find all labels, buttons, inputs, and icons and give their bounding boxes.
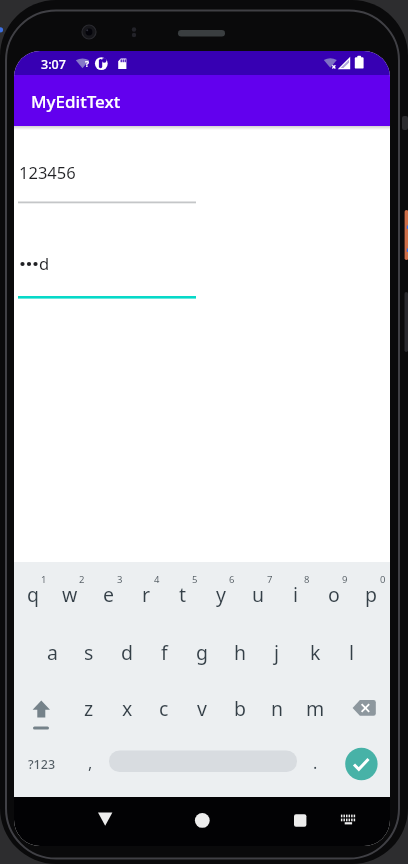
- button[interactable]: v: [184, 685, 220, 731]
- button[interactable]: [109, 752, 297, 774]
- staticText: ?: [85, 58, 90, 70]
- staticText: d: [39, 252, 50, 274]
- button[interactable]: n: [259, 685, 295, 731]
- button[interactable]: l: [334, 629, 370, 675]
- button[interactable]: s: [71, 629, 107, 675]
- button[interactable]: i: [278, 571, 314, 617]
- staticText: 3: [117, 573, 123, 586]
- staticText: u: [252, 581, 265, 608]
- button[interactable]: ,: [75, 743, 105, 783]
- staticText: 0: [380, 573, 386, 586]
- staticText: 6: [229, 573, 235, 586]
- staticText: 4: [154, 573, 160, 586]
- staticText: .: [313, 752, 318, 774]
- staticText: ,: [88, 752, 93, 774]
- button[interactable]: [277, 802, 317, 836]
- staticText: 5: [192, 573, 198, 586]
- staticText: ?123: [28, 756, 56, 773]
- staticText: j: [274, 639, 280, 666]
- button[interactable]: [348, 688, 380, 728]
- button[interactable]: [330, 802, 366, 836]
- button[interactable]: u: [240, 571, 276, 617]
- staticText: f: [161, 639, 168, 666]
- button[interactable]: [85, 802, 125, 836]
- staticText: s: [84, 639, 94, 666]
- button[interactable]: [182, 802, 222, 836]
- staticText: h: [234, 639, 247, 666]
- staticText: v: [197, 695, 207, 722]
- staticText: 123456: [19, 161, 76, 183]
- staticText: 1: [41, 573, 47, 586]
- staticText: d: [121, 639, 133, 666]
- button[interactable]: y: [203, 571, 239, 617]
- button[interactable]: x: [109, 685, 145, 731]
- staticText: o: [328, 581, 340, 608]
- button[interactable]: g: [184, 629, 220, 675]
- button[interactable]: z: [71, 685, 107, 731]
- staticText: 3:07: [41, 56, 66, 73]
- button[interactable]: r: [128, 571, 164, 617]
- staticText: q: [27, 581, 39, 608]
- button[interactable]: p: [353, 571, 389, 617]
- button[interactable]: o: [316, 571, 352, 617]
- staticText: e: [103, 581, 114, 608]
- staticText: x: [122, 695, 133, 722]
- staticText: p: [365, 581, 377, 608]
- button[interactable]: e: [90, 571, 126, 617]
- button[interactable]: b: [222, 685, 258, 731]
- button[interactable]: d: [109, 629, 145, 675]
- staticText: 2: [79, 573, 85, 586]
- staticText: m: [306, 695, 325, 722]
- staticText: g: [196, 639, 208, 666]
- staticText: n: [271, 695, 284, 722]
- staticText: i: [293, 581, 299, 608]
- staticText: MyEditText: [31, 90, 121, 113]
- button[interactable]: k: [297, 629, 333, 675]
- staticText: 7: [267, 573, 273, 586]
- button[interactable]: m: [297, 685, 333, 731]
- button[interactable]: .: [300, 743, 330, 783]
- staticText: 9: [342, 573, 348, 586]
- staticText: z: [84, 695, 94, 722]
- button[interactable]: q: [15, 571, 51, 617]
- button[interactable]: j: [259, 629, 295, 675]
- staticText: w: [62, 581, 78, 608]
- button[interactable]: [18, 146, 198, 206]
- button[interactable]: c: [146, 685, 182, 731]
- button[interactable]: f: [146, 629, 182, 675]
- staticText: c: [159, 695, 169, 722]
- staticText: r: [142, 581, 151, 608]
- button[interactable]: a: [34, 629, 70, 675]
- staticText: l: [349, 639, 355, 666]
- button[interactable]: h: [222, 629, 258, 675]
- button[interactable]: [18, 237, 198, 299]
- button[interactable]: ?123: [22, 744, 62, 784]
- button[interactable]: [345, 748, 378, 781]
- button[interactable]: w: [52, 571, 88, 617]
- staticText: t: [179, 581, 187, 608]
- button[interactable]: t: [165, 571, 201, 617]
- button[interactable]: [25, 688, 57, 728]
- staticText: 8: [304, 573, 310, 586]
- staticText: b: [234, 695, 246, 722]
- staticText: y: [216, 581, 226, 608]
- staticText: a: [47, 639, 58, 666]
- staticText: k: [310, 639, 321, 666]
